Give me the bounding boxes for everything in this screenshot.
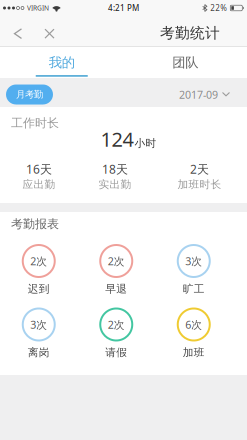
staticText: 月考勤 [16, 89, 43, 100]
staticText: 考勤报表 [11, 217, 59, 231]
button[interactable]: 团队 [123, 47, 247, 78]
staticText: 18天 [102, 161, 128, 177]
staticText: 请假 [105, 346, 127, 359]
staticText: 16天 [26, 161, 52, 177]
staticText: 工作时长 [11, 116, 59, 130]
staticText: 2次 [108, 317, 125, 332]
staticText: VIRGIN [27, 4, 49, 12]
button[interactable]: Close [28, 14, 55, 49]
staticText: 2次 [30, 254, 47, 268]
button[interactable]: 月考勤 [6, 84, 53, 104]
staticText: 加班时长 [177, 178, 221, 191]
staticText: 旷工 [183, 282, 205, 295]
staticText: 124 [100, 126, 133, 152]
staticText: 加班 [183, 346, 205, 359]
staticText: 离岗 [28, 346, 50, 359]
staticText: 实出勤 [98, 178, 131, 191]
staticText: 4:21 PM [108, 3, 139, 13]
staticText: 团队 [172, 54, 198, 71]
staticText: 迟到 [28, 282, 50, 295]
staticText: 早退 [105, 282, 127, 295]
button[interactable]: 选择月份 [179, 87, 247, 102]
staticText: 小时 [134, 137, 156, 150]
staticText: 2次 [108, 254, 125, 268]
staticText: 2017-09 [179, 87, 218, 102]
staticText: 应出勤 [22, 178, 55, 191]
staticText: 3次 [30, 317, 47, 332]
staticText: 22% [210, 3, 227, 13]
staticText: 我的 [49, 54, 75, 71]
staticText: 2天 [190, 161, 209, 177]
button[interactable]: Back [8, 14, 28, 49]
staticText: 考勤统计 [160, 24, 220, 42]
staticText: 6次 [185, 317, 202, 332]
button[interactable]: 我的 [0, 47, 123, 78]
staticText: 3次 [185, 254, 202, 268]
